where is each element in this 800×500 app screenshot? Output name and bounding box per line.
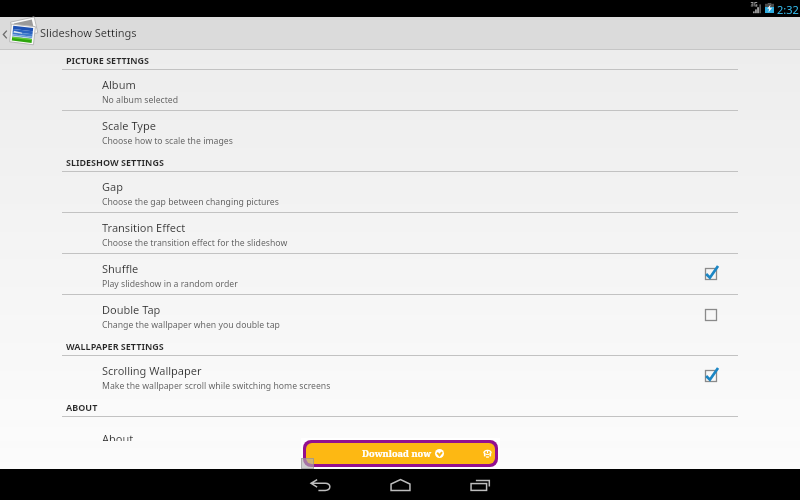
button[interactable]: Shuffle — [0, 254, 800, 294]
staticText: WALLPAPER SETTINGS — [66, 340, 164, 352]
button[interactable]: Transition Effect — [0, 213, 800, 253]
staticText: Scale Type — [102, 118, 156, 133]
button[interactable]: Checked — [703, 266, 719, 282]
staticText: Play slideshow in a random order — [102, 278, 238, 290]
button[interactable]: Download now — [306, 443, 495, 464]
button[interactable]: Recent apps — [458, 469, 502, 500]
staticText: Make the wallpaper scroll while switchin… — [102, 380, 331, 392]
staticText: Album — [102, 77, 136, 92]
button[interactable]: Gap — [0, 172, 800, 212]
staticText: No album selected — [102, 94, 179, 106]
staticText: Choose the transition effect for the sli… — [102, 237, 288, 249]
button[interactable]: Checked — [703, 368, 719, 384]
staticText: Choose how to scale the images — [102, 135, 233, 147]
button[interactable]: Navigate up — [0, 17, 137, 50]
staticText: PICTURE SETTINGS — [66, 54, 150, 66]
staticText: Choose the gap between changing pictures — [102, 196, 279, 208]
staticText: 2:32 — [777, 2, 799, 17]
button[interactable]: Double Tap — [0, 295, 800, 335]
staticText: Slideshow Settings — [40, 25, 137, 40]
staticText: About — [102, 431, 134, 446]
button[interactable]: Scrolling Wallpaper — [0, 356, 800, 396]
staticText: Change the wallpaper when you double tap — [102, 319, 280, 331]
staticText: Shuffle — [102, 261, 139, 276]
button[interactable]: Unchecked — [703, 307, 719, 323]
button[interactable]: Album — [0, 70, 800, 110]
staticText: Download now — [362, 447, 432, 460]
staticText: Gap — [102, 179, 123, 194]
button[interactable]: About — [0, 417, 800, 457]
button[interactable]: Back — [298, 469, 342, 500]
staticText: Scrolling Wallpaper — [102, 363, 202, 378]
button[interactable]: Home — [378, 469, 422, 500]
staticText: Double Tap — [102, 302, 161, 317]
staticText: SLIDESHOW SETTINGS — [66, 156, 164, 168]
other: Navigate up — [0, 24, 9, 44]
button[interactable]: Scale Type — [0, 111, 800, 151]
staticText: ABOUT — [66, 401, 98, 413]
staticText: Transition Effect — [102, 220, 186, 235]
